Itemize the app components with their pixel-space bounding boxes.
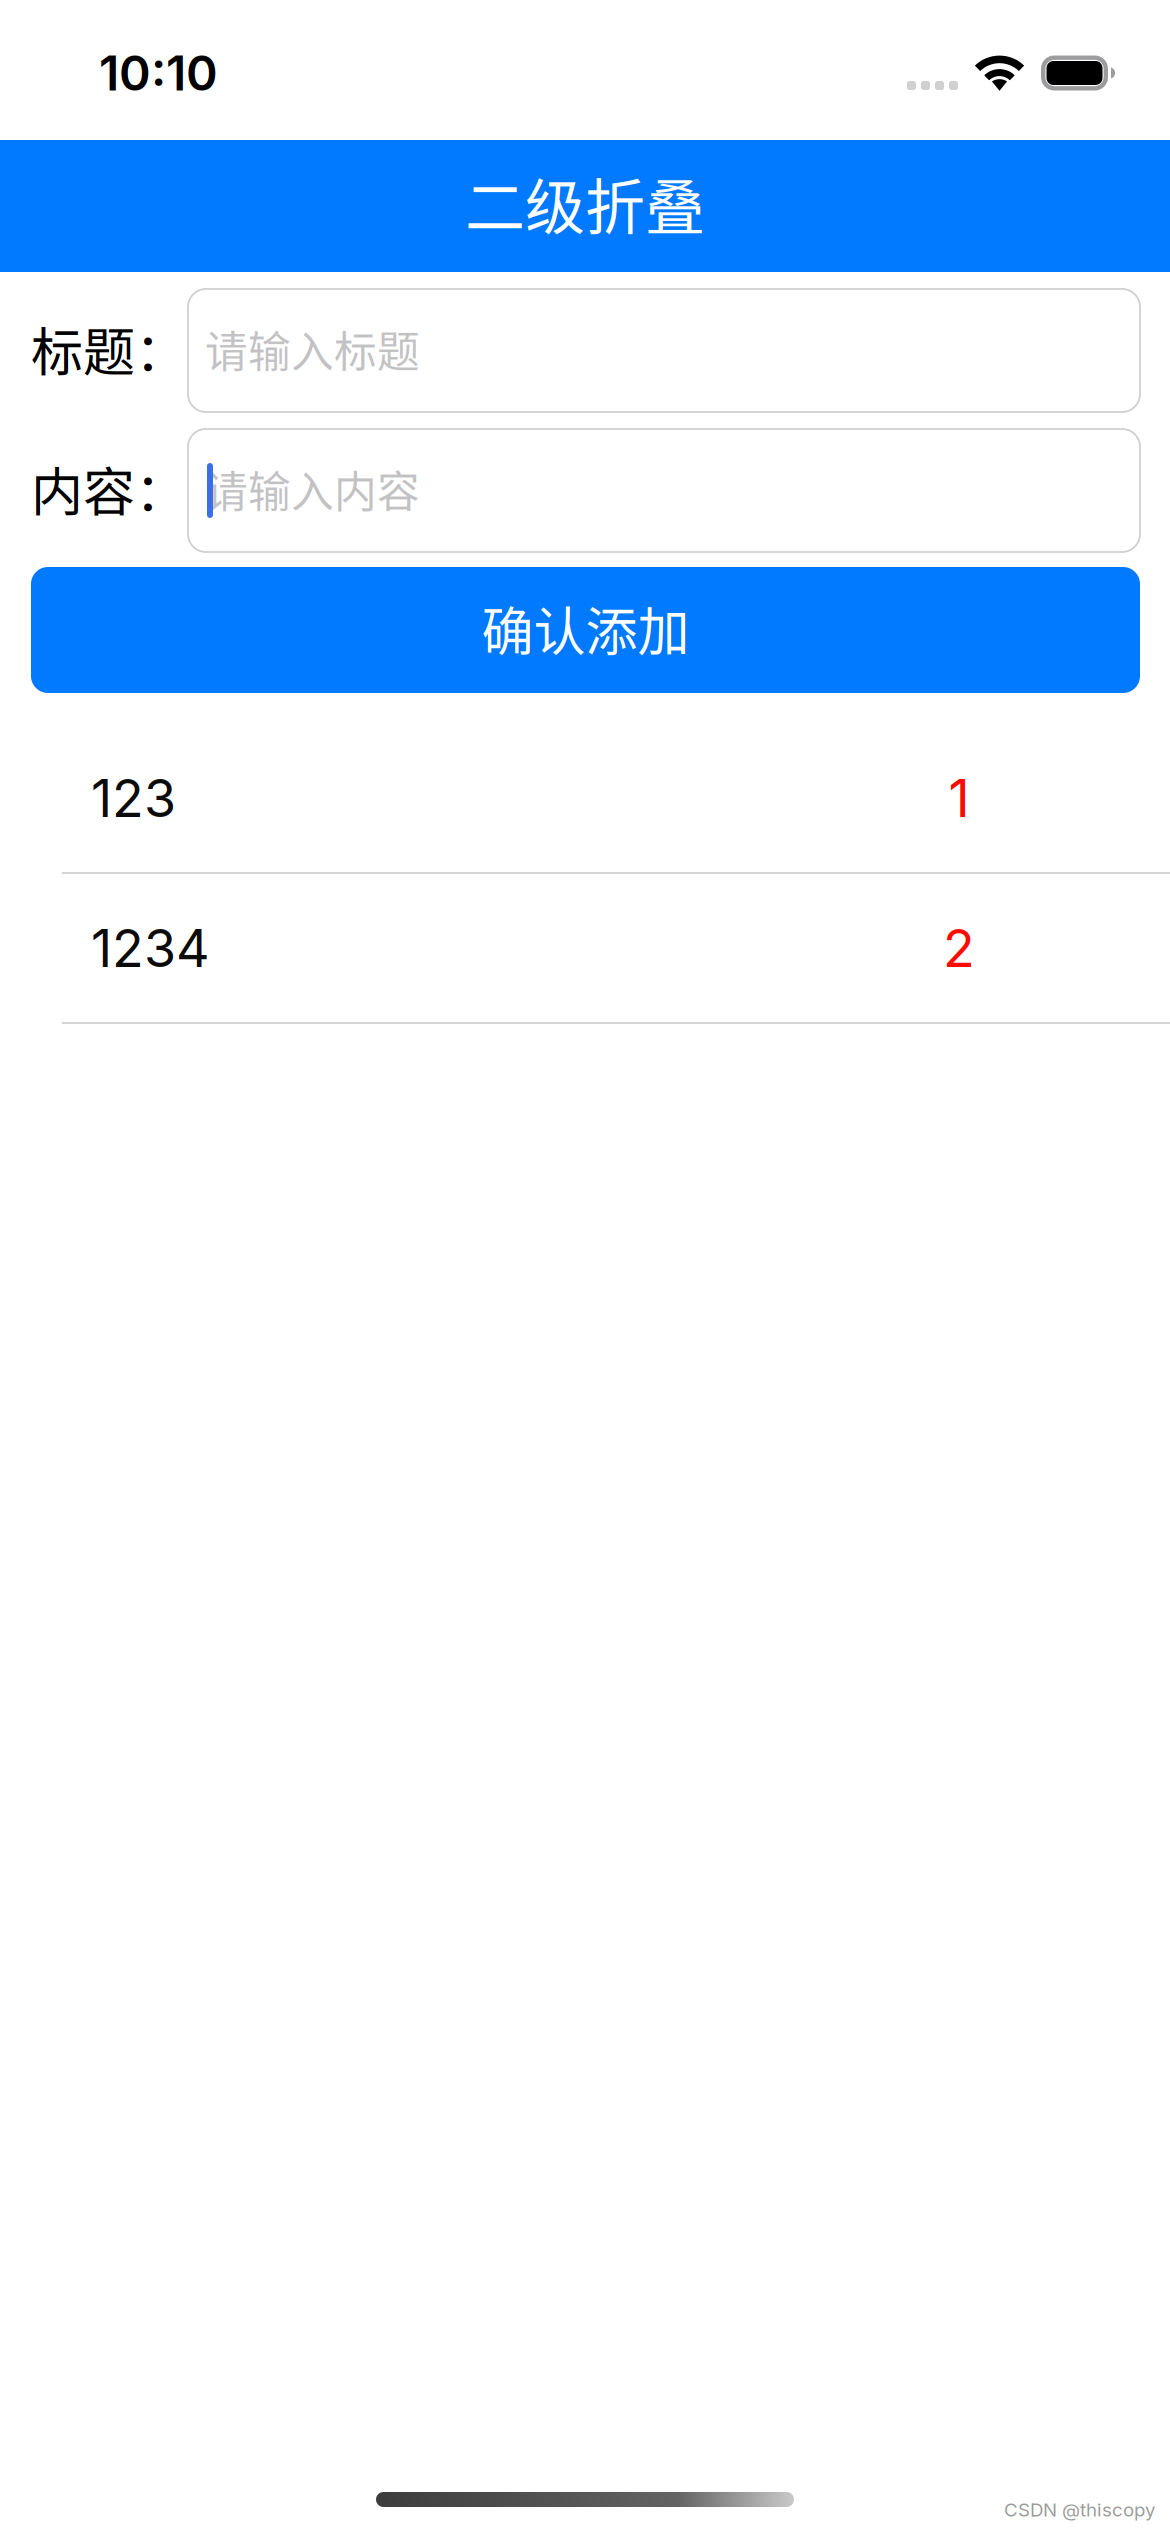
staticText: 123	[91, 766, 176, 829]
staticText: CSDN @thiscopy	[1004, 2498, 1155, 2521]
staticText: 1234	[91, 916, 210, 979]
button[interactable]: 请输入标题	[188, 289, 1140, 412]
button[interactable]: 确认添加	[31, 567, 1140, 693]
button[interactable]: 1234	[0, 874, 1170, 1024]
staticText: 内容：	[31, 451, 187, 526]
staticText: 1	[948, 766, 969, 829]
staticText: 确认添加	[481, 590, 689, 666]
staticText: 10:10	[99, 44, 218, 102]
staticText: 二级折叠	[465, 160, 705, 246]
staticText: 请输入标题	[205, 318, 420, 380]
button[interactable]: 123	[0, 724, 1170, 874]
button[interactable]: 请输入内容	[188, 429, 1140, 552]
staticText: 标题：	[31, 311, 187, 386]
staticText: 2	[943, 916, 975, 979]
staticText: 请输入内容	[205, 458, 420, 520]
